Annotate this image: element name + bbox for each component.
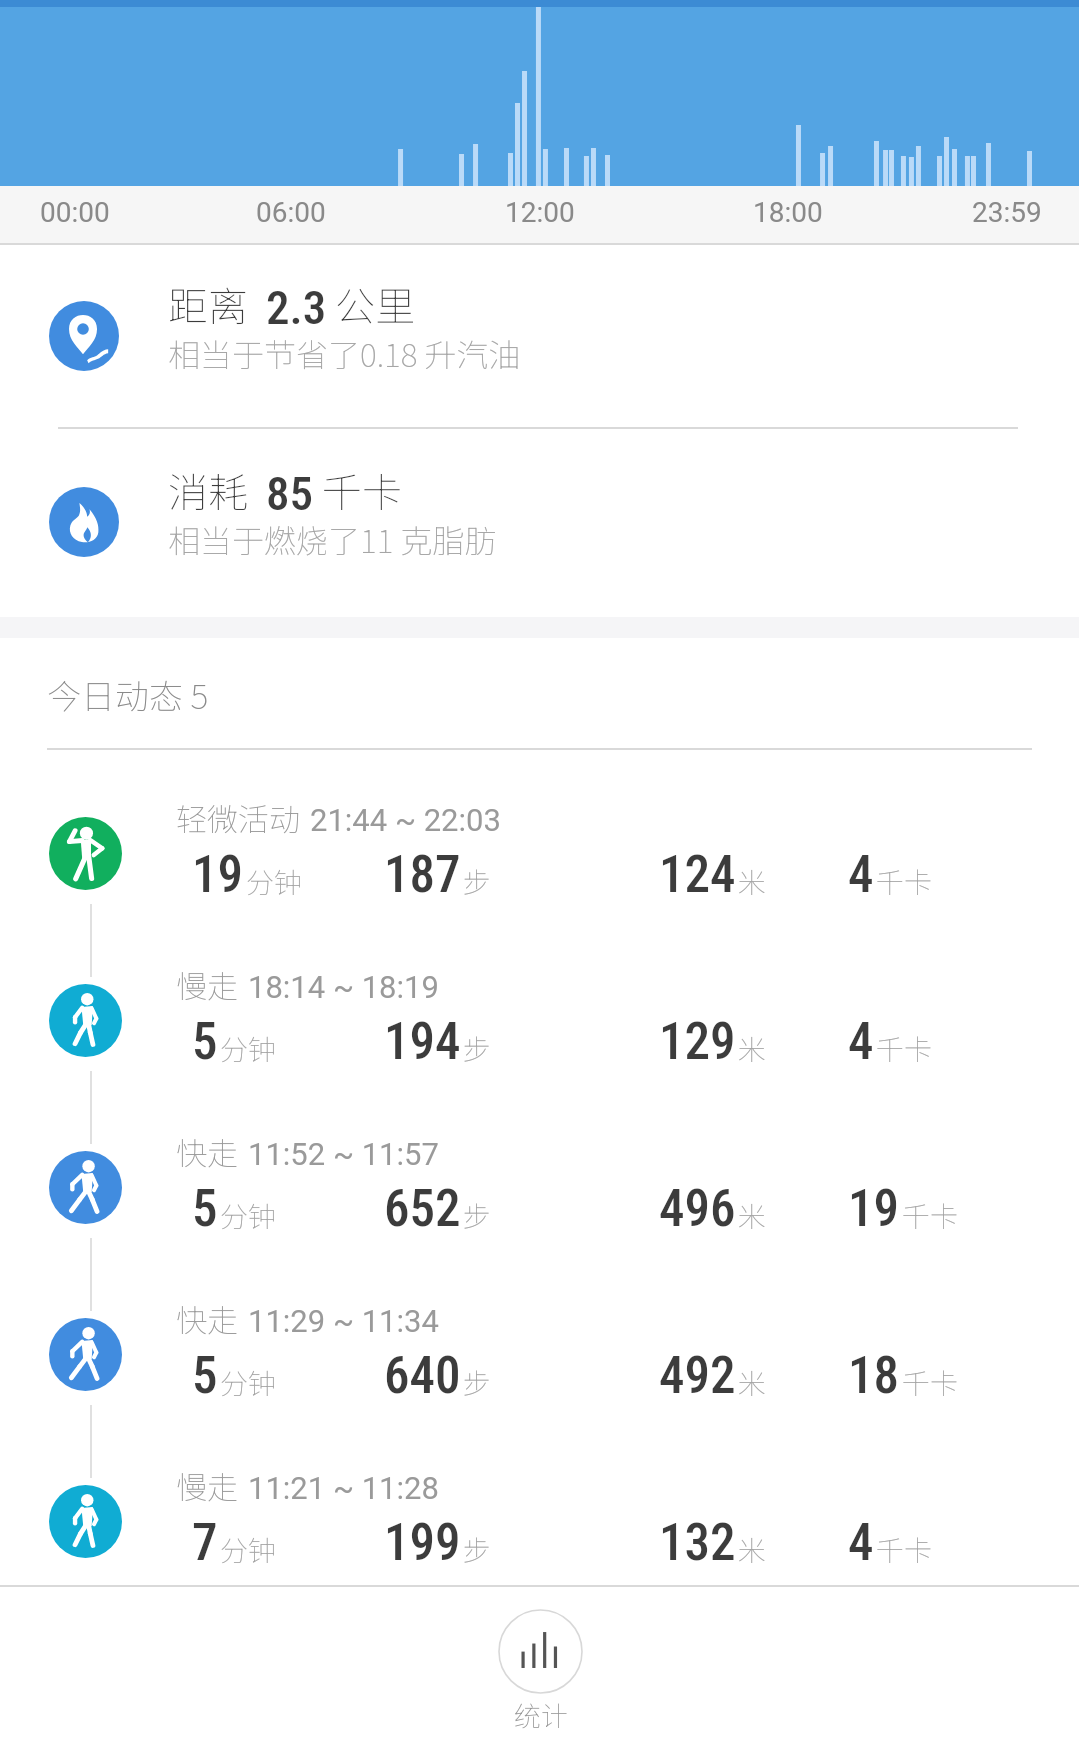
button[interactable]: 统计 xyxy=(441,1598,641,1750)
staticText: 5 xyxy=(192,1012,218,1072)
staticText: 18:14 ~ 18:19 xyxy=(248,969,439,1005)
staticText: 06:00 xyxy=(256,196,326,229)
staticText: 千卡 xyxy=(902,1362,959,1403)
staticText: 米 xyxy=(738,1195,767,1236)
staticText: 米 xyxy=(738,1529,767,1570)
staticText: 187 xyxy=(384,845,461,905)
button[interactable]: 消耗 xyxy=(0,430,1079,616)
staticText: 18 xyxy=(848,1346,900,1406)
staticText: 分钟 xyxy=(220,1529,277,1570)
staticText: 00:00 xyxy=(40,196,110,229)
staticText: 统计 xyxy=(441,1695,641,1734)
staticText: 21:44 ~ 22:03 xyxy=(310,802,501,838)
staticText: 步 xyxy=(463,861,492,902)
staticText: 步 xyxy=(463,1028,492,1069)
staticText: 分钟 xyxy=(220,1362,277,1403)
staticText: 轻微活动 xyxy=(176,795,300,840)
staticText: 步 xyxy=(463,1529,492,1570)
staticText: 124 xyxy=(659,845,736,905)
staticText: 496 xyxy=(659,1179,736,1239)
button[interactable]: 快走 xyxy=(0,1116,1079,1283)
staticText: 快走 xyxy=(176,1129,238,1174)
staticText: 公里 xyxy=(335,275,415,333)
staticText: 步 xyxy=(463,1195,492,1236)
staticText: 19 xyxy=(192,845,244,905)
button[interactable]: 距离 xyxy=(0,244,1079,430)
button[interactable]: 快走 xyxy=(0,1283,1079,1450)
button[interactable]: 慢走 xyxy=(0,949,1079,1116)
staticText: 85 xyxy=(266,466,314,521)
staticText: 12:00 xyxy=(505,196,575,229)
staticText: 132 xyxy=(659,1513,736,1573)
staticText: 相当于燃烧了11 克脂肪 xyxy=(168,516,497,562)
staticText: 11:21 ~ 11:28 xyxy=(248,1470,439,1506)
staticText: 慢走 xyxy=(176,962,238,1007)
button[interactable]: 慢走 xyxy=(0,1450,1079,1617)
staticText: 距离 xyxy=(168,275,248,333)
staticText: 11:29 ~ 11:34 xyxy=(248,1303,439,1339)
staticText: 18:00 xyxy=(753,196,823,229)
staticText: 相当于节省了0.18 升汽油 xyxy=(168,330,521,376)
staticText: 分钟 xyxy=(220,1028,277,1069)
staticText: 分钟 xyxy=(220,1195,277,1236)
staticText: 分钟 xyxy=(246,861,303,902)
staticText: 消耗 xyxy=(168,461,248,519)
staticText: 23:59 xyxy=(972,196,1042,229)
staticText: 652 xyxy=(384,1179,461,1239)
staticText: 11:52 ~ 11:57 xyxy=(248,1136,439,1172)
staticText: 千卡 xyxy=(876,1529,933,1570)
staticText: 4 xyxy=(848,1513,874,1573)
staticText: 5 xyxy=(192,1179,218,1239)
staticText: 2.3 xyxy=(266,280,327,335)
staticText: 步 xyxy=(463,1362,492,1403)
button[interactable]: 轻微活动 xyxy=(0,782,1079,949)
staticText: 米 xyxy=(738,861,767,902)
staticText: 千卡 xyxy=(902,1195,959,1236)
staticText: 492 xyxy=(659,1346,736,1406)
staticText: 194 xyxy=(384,1012,461,1072)
staticText: 129 xyxy=(659,1012,736,1072)
staticText: 米 xyxy=(738,1028,767,1069)
staticText: 5 xyxy=(192,1346,218,1406)
staticText: 千卡 xyxy=(876,861,933,902)
staticText: 千卡 xyxy=(876,1028,933,1069)
staticText: 199 xyxy=(384,1513,461,1573)
staticText: 7 xyxy=(192,1513,218,1573)
staticText: 快走 xyxy=(176,1296,238,1341)
staticText: 千卡 xyxy=(322,461,402,519)
staticText: 640 xyxy=(384,1346,461,1406)
staticText: 米 xyxy=(738,1362,767,1403)
staticText: 慢走 xyxy=(176,1463,238,1508)
staticText: 4 xyxy=(848,1012,874,1072)
staticText: 19 xyxy=(848,1179,900,1239)
staticText: 4 xyxy=(848,845,874,905)
staticText: 今日动态 5 xyxy=(47,670,209,719)
